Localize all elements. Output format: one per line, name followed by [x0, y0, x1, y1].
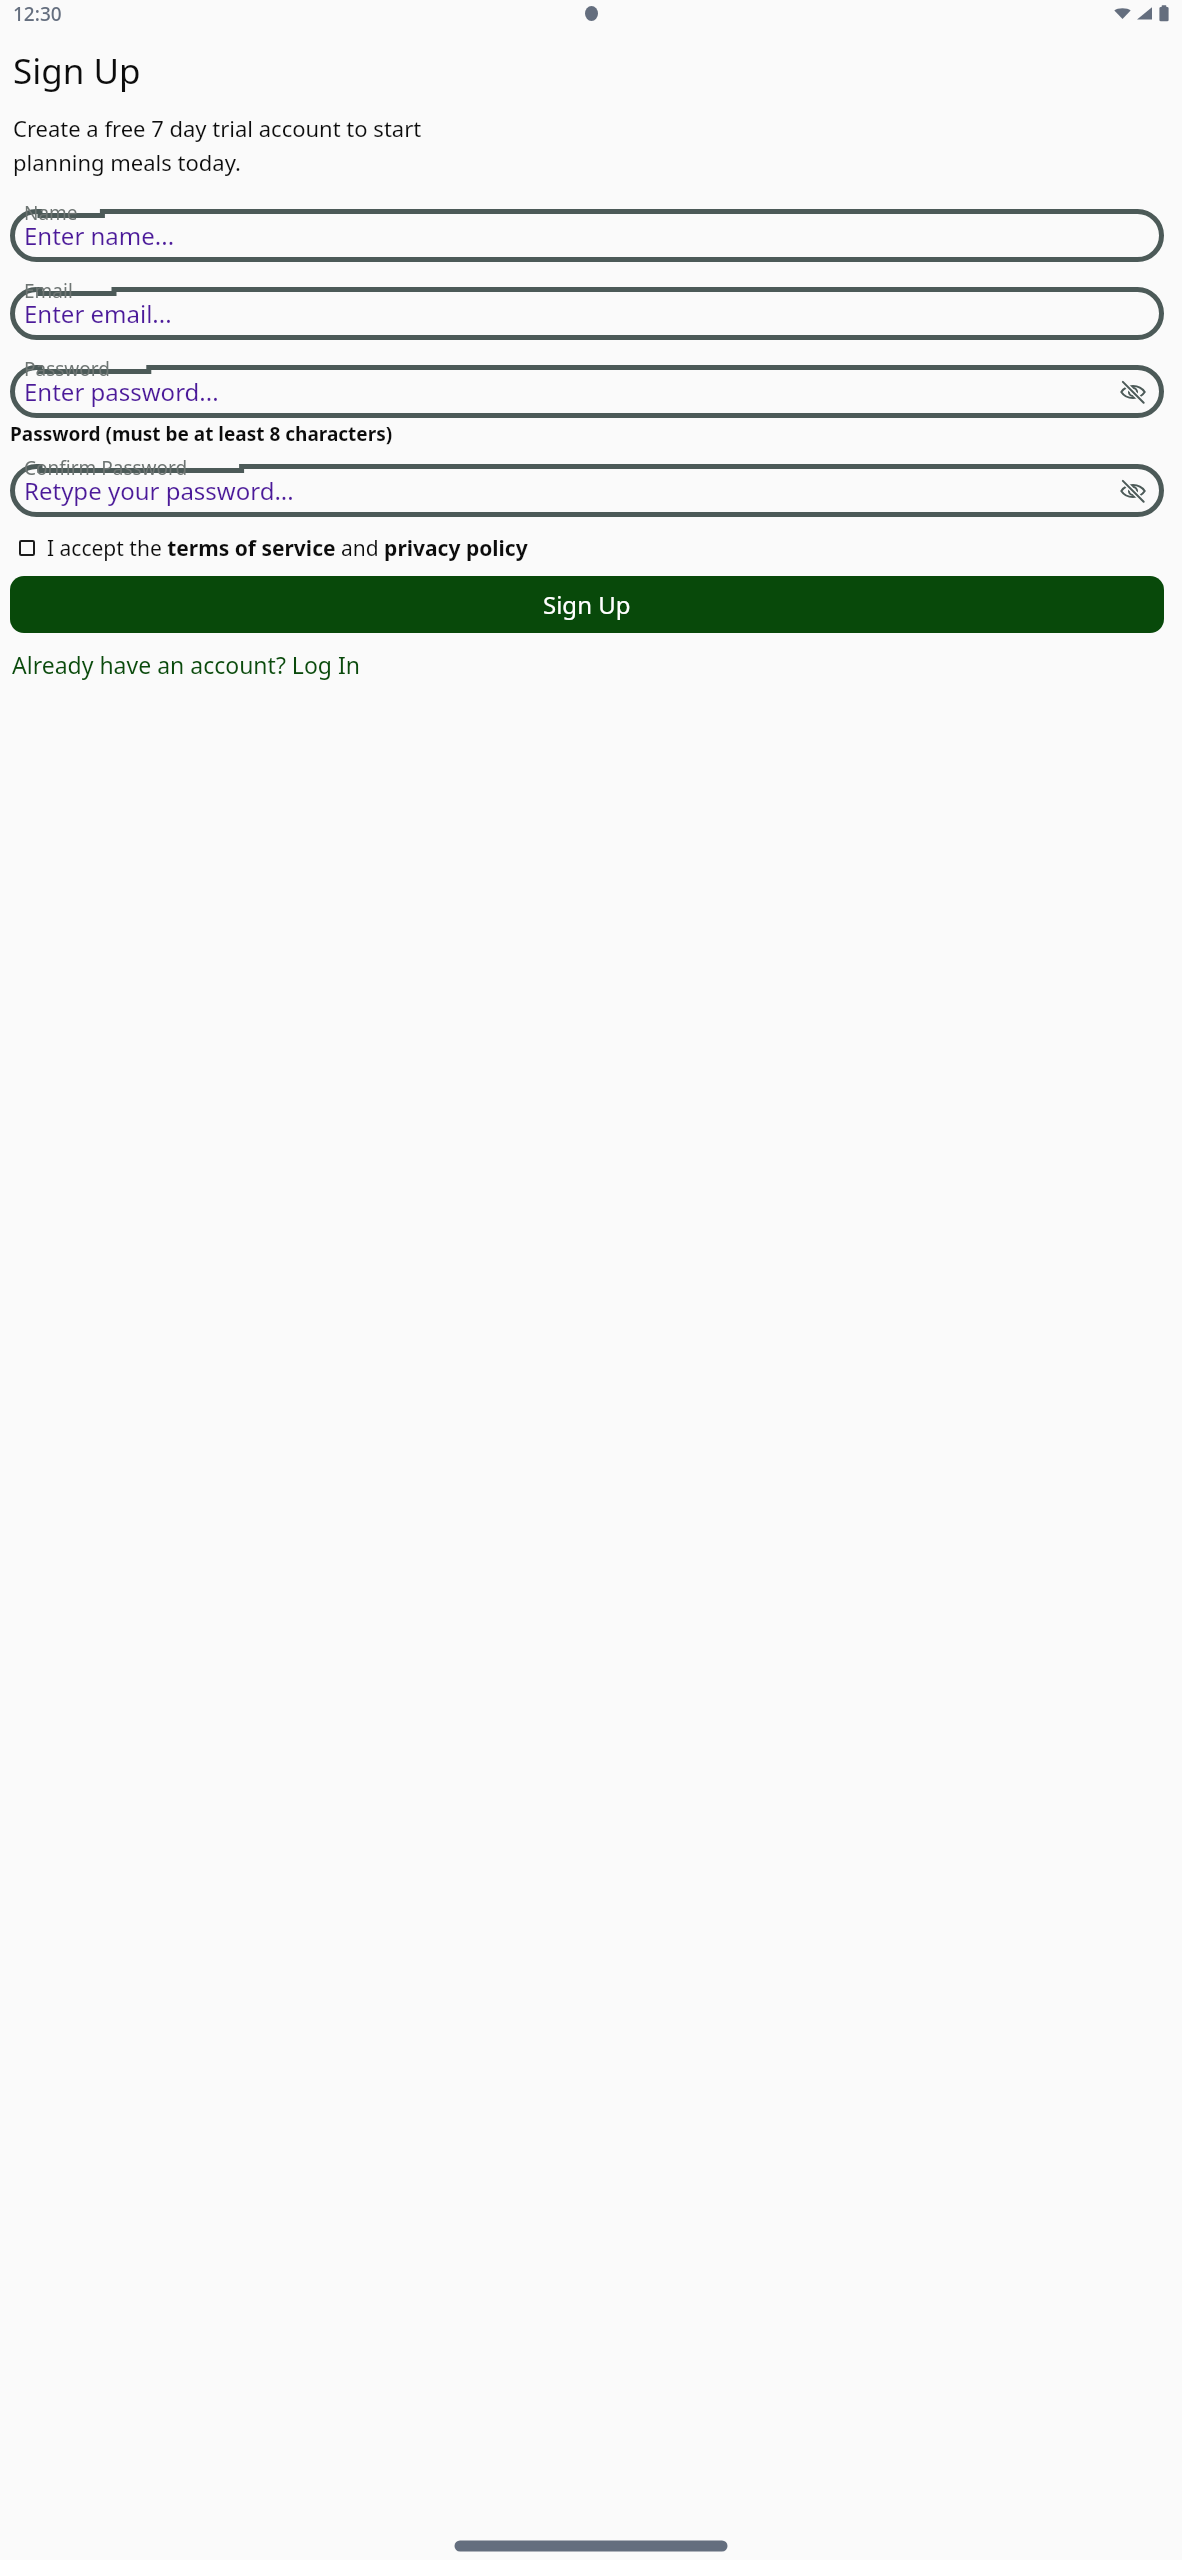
staticText: Enter password... [24, 375, 219, 408]
button[interactable]: Password [10, 356, 1164, 418]
button[interactable]: Name [10, 200, 1164, 262]
staticText: Retype your password... [24, 474, 294, 507]
button[interactable]: Already have an account? Log In [10, 646, 362, 683]
button[interactable]: Accept terms checkbox [12, 533, 1172, 563]
staticText: Enter email... [24, 297, 172, 330]
staticText: Password [24, 356, 110, 382]
staticText: Sign Up [13, 47, 141, 95]
staticText: planning meals today. [13, 147, 241, 177]
button[interactable]: Show password [1112, 371, 1154, 413]
staticText: Sign Up [543, 588, 631, 621]
staticText: 12:30 [13, 1, 62, 27]
staticText: Name [24, 200, 78, 226]
staticText: Email [24, 278, 73, 304]
staticText: Already have an account? Log In [12, 649, 360, 680]
staticText: Password (must be at least 8 characters) [10, 421, 393, 447]
button[interactable]: Sign Up [10, 576, 1164, 633]
staticText: Enter name... [24, 219, 175, 252]
staticText: Create a free 7 day trial account to sta… [13, 113, 422, 143]
button[interactable]: Confirm Password [10, 455, 1164, 517]
staticText: I accept the terms of service and privac… [47, 534, 528, 563]
other: Accept terms checkbox [12, 533, 42, 563]
button[interactable]: Email [10, 278, 1164, 340]
staticText: Confirm Password [24, 455, 188, 481]
button[interactable]: Show password [1112, 470, 1154, 512]
